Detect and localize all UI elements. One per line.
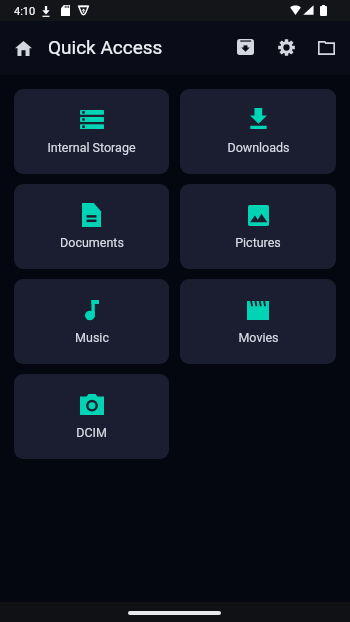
button[interactable]: Pictures: [180, 184, 336, 269]
button[interactable]: Settings: [270, 31, 302, 63]
button[interactable]: Folders: [310, 32, 342, 64]
staticText: Movies: [238, 330, 279, 345]
button[interactable]: Music: [14, 279, 169, 364]
staticText: DCIM: [76, 425, 107, 440]
staticText: Internal Storage: [47, 140, 136, 155]
button[interactable]: Downloads: [180, 89, 336, 174]
button[interactable]: Documents: [14, 184, 169, 269]
button[interactable]: Movies: [180, 279, 336, 364]
staticText: Music: [75, 330, 109, 345]
staticText: Quick Access: [48, 36, 163, 58]
staticText: 4:10: [14, 5, 36, 18]
button[interactable]: DCIM: [14, 374, 169, 459]
button[interactable]: Install app: [229, 31, 261, 63]
button[interactable]: Internal Storage: [14, 89, 169, 174]
staticText: Pictures: [235, 235, 281, 250]
button[interactable]: Home: [7, 32, 39, 64]
staticText: Downloads: [227, 140, 290, 155]
staticText: Documents: [60, 235, 124, 250]
